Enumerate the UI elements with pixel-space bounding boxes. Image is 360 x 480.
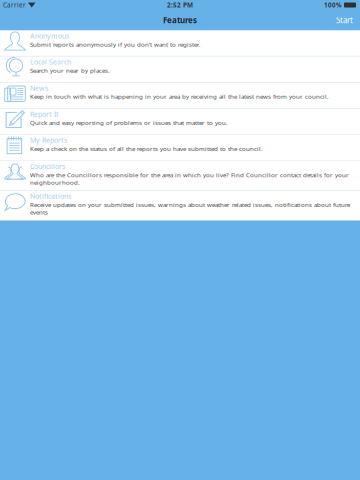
staticText: Start (336, 15, 353, 26)
staticText: Search your near by places. (30, 67, 110, 74)
staticText: Who are the Councillors responsible for … (30, 171, 349, 186)
staticText: 2:52 PM (167, 1, 193, 9)
button[interactable]: My Reports (0, 135, 360, 161)
staticText: Councillors (30, 161, 65, 171)
staticText: Keep in touch with what is happening in … (30, 93, 329, 100)
staticText: Report It (30, 109, 59, 119)
button[interactable]: Councillors (0, 161, 360, 191)
staticText: My Reports (30, 135, 67, 145)
staticText: Notifications (30, 191, 71, 201)
button[interactable]: Report It (0, 109, 360, 135)
button[interactable]: Notifications (0, 191, 360, 220)
staticText: Features (163, 15, 197, 26)
button[interactable]: Start (326, 12, 360, 29)
staticText: Local Search (30, 57, 71, 67)
staticText: Keep a check on the status of all the re… (30, 145, 263, 152)
staticText: 100% (324, 1, 342, 9)
staticText: Receive updates on your submitted issues… (30, 201, 350, 216)
button[interactable]: Local Search (0, 56, 360, 82)
staticText: Carrier (3, 1, 26, 9)
staticText: News (30, 83, 48, 93)
staticText: Anonymous (30, 31, 69, 40)
button[interactable]: News (0, 82, 360, 109)
staticText: Quick and easy reporting of problems or … (30, 119, 228, 126)
staticText: Submit reports anonymously if you don't … (30, 40, 201, 48)
button[interactable]: Anonymous (0, 30, 360, 56)
